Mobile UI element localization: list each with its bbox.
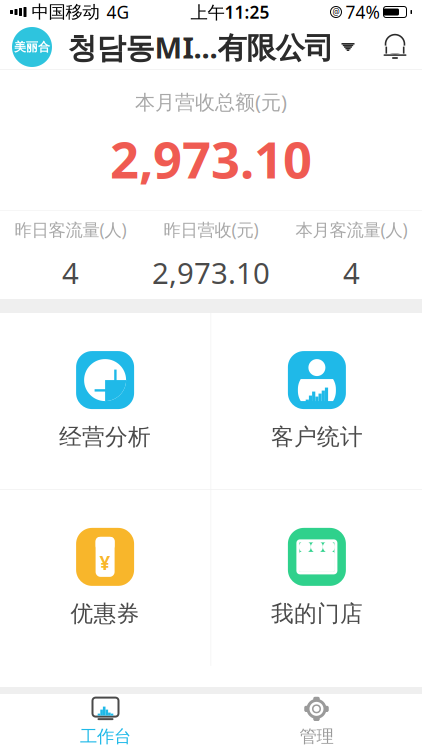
staticText: 昨日营收(元) <box>163 218 258 241</box>
staticText: 74% <box>345 0 379 23</box>
button[interactable]: Company logo <box>12 27 52 67</box>
button[interactable]: 管理 <box>211 694 422 750</box>
button[interactable]: 我的门店 <box>211 490 422 666</box>
button[interactable]: Notifications <box>380 30 410 64</box>
button[interactable]: 客户统计 <box>211 313 422 489</box>
button[interactable]: ¥ <box>0 490 211 666</box>
button[interactable]: 工作台 <box>0 694 211 750</box>
staticText: 昨日客流量(人) <box>14 218 126 241</box>
staticText: @ <box>332 7 339 17</box>
staticText: 上午11:25 <box>190 0 269 23</box>
staticText: 2,973.10 <box>110 125 312 192</box>
button[interactable]: 청담동MI...有限公司 <box>61 21 360 72</box>
staticText: 4 <box>62 253 79 292</box>
staticText: ¥ <box>100 550 111 575</box>
staticText: 客户统计 <box>271 423 363 451</box>
staticText: 美丽合 <box>14 40 50 54</box>
staticText: 本月客流量(人) <box>296 218 408 241</box>
staticText: 4G <box>106 0 129 23</box>
staticText: 我的门店 <box>271 600 363 628</box>
button[interactable]: 经营分析 <box>0 313 211 489</box>
staticText: 管理 <box>299 726 333 747</box>
staticText: 本月营收总额(元) <box>135 89 287 115</box>
staticText: 4 <box>343 253 360 292</box>
staticText: 工作台 <box>80 726 131 747</box>
staticText: 2,973.10 <box>152 253 270 292</box>
staticText: 经营分析 <box>59 423 151 451</box>
staticText: 청담동MI...有限公司 <box>67 27 333 66</box>
staticText: 优惠券 <box>71 600 140 628</box>
staticText: 中国移动 <box>31 1 99 23</box>
